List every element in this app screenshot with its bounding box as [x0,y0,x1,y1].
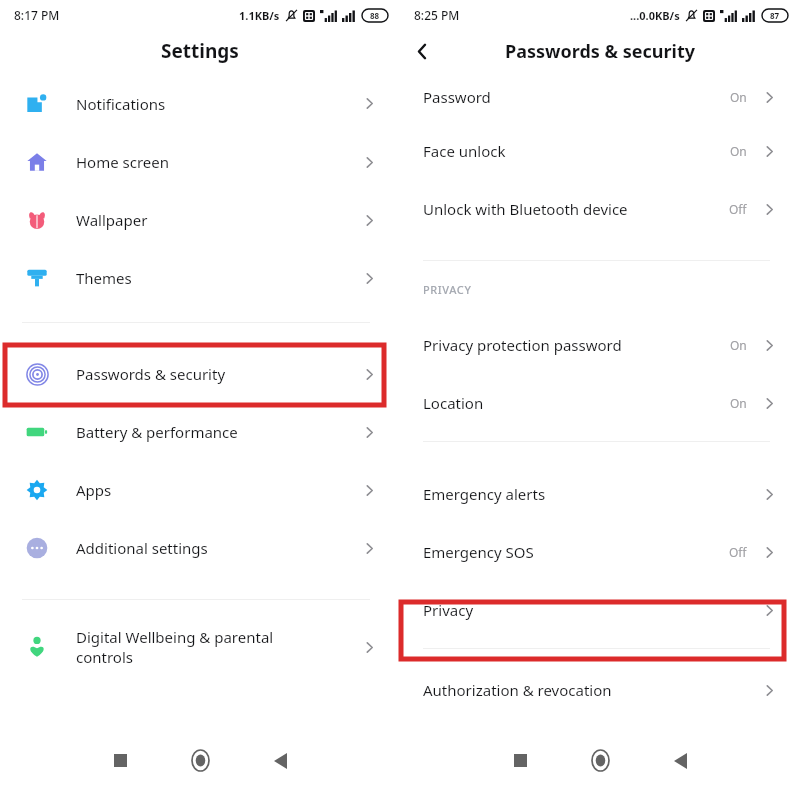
staticText: Notifications [76,94,166,114]
button[interactable]: Emergency SOS [400,523,800,581]
button[interactable]: Location [400,374,800,432]
staticText: 8:25 PM [414,7,460,23]
staticText: Privacy protection password [423,335,730,355]
staticText: Passwords & security [76,364,226,384]
staticText: Emergency SOS [423,542,729,562]
staticText: Authorization & revocation [423,680,761,700]
button[interactable]: Digital Wellbeing & parental [0,614,400,680]
button[interactable]: Passwords & security [0,345,400,403]
staticText: Wallpaper [76,210,148,230]
staticText: Location [423,393,730,413]
staticText: 8:17 PM [14,7,60,23]
button[interactable]: Additional settings [0,519,400,577]
button[interactable]: Wallpaper [0,191,400,249]
button[interactable]: Battery & performance [0,403,400,461]
button[interactable]: Face unlock [400,122,800,180]
button[interactable]: Themes [0,249,400,307]
button[interactable]: Password [400,72,800,122]
staticText: 87 [770,10,780,21]
staticText: Off [729,201,747,217]
button[interactable]: Notifications [0,74,400,133]
button[interactable]: Back [400,30,444,72]
staticText: 88 [370,10,380,21]
button[interactable]: Home [560,735,640,786]
button[interactable]: Recents [80,735,160,786]
staticText: On [730,337,747,353]
button[interactable]: Back [240,735,320,786]
staticText: Off [729,544,747,560]
staticText: controls [76,647,133,667]
button[interactable]: Privacy protection password [400,316,800,374]
staticText: Themes [76,268,132,288]
button[interactable]: Emergency alerts [400,465,800,523]
staticText: Apps [76,480,112,500]
staticText: Home screen [76,152,170,172]
staticText: PRIVACY [423,282,472,297]
button[interactable]: Back [640,735,720,786]
staticText: Settings [161,38,239,64]
staticText: Passwords & security [505,39,695,64]
staticText: Additional settings [76,538,208,558]
staticText: Digital Wellbeing & parental [76,627,274,647]
staticText: Unlock with Bluetooth device [423,199,729,219]
staticText: Face unlock [423,141,730,161]
button[interactable]: Recents [480,735,560,786]
staticText: On [730,395,747,411]
button[interactable]: Privacy [400,581,800,639]
staticText: On [730,89,747,105]
button[interactable]: Home [160,735,240,786]
staticText: ...0.0KB/s [630,8,680,23]
staticText: On [730,143,747,159]
button[interactable]: Authorization & revocation [400,675,800,705]
button[interactable]: Home screen [0,133,400,191]
staticText: Privacy [423,600,761,620]
button[interactable]: Apps [0,461,400,519]
staticText: Battery & performance [76,422,238,442]
staticText: 1.1KB/s [239,8,280,23]
staticText: Password [423,87,730,107]
staticText: Emergency alerts [423,484,761,504]
button[interactable]: Unlock with Bluetooth device [400,180,800,238]
